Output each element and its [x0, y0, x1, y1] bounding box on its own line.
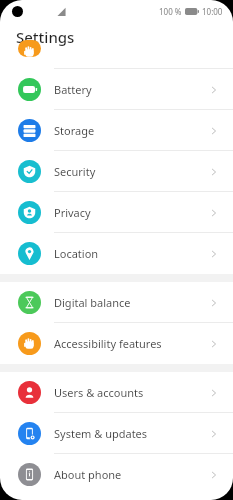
staticText: Battery [54, 82, 92, 97]
button[interactable]: System & updates [0, 413, 233, 454]
staticText: Privacy [54, 205, 91, 220]
button[interactable] [0, 52, 233, 69]
button[interactable]: Location [0, 233, 233, 274]
staticText: Users & accounts [54, 385, 144, 400]
button[interactable]: Accessibility features [0, 323, 233, 364]
staticText: System & updates [54, 426, 148, 441]
staticText: Digital balance [54, 295, 131, 310]
staticText: Accessibility features [54, 336, 162, 351]
staticText: Location [54, 246, 99, 261]
button[interactable]: Digital balance [0, 282, 233, 323]
staticText: 10:00 [202, 6, 223, 17]
staticText: 100 % [159, 6, 182, 17]
staticText: Storage [54, 123, 95, 138]
button[interactable]: Storage [0, 110, 233, 151]
button[interactable]: Users & accounts [0, 372, 233, 413]
button[interactable]: Security [0, 151, 233, 192]
button[interactable]: Battery [0, 69, 233, 110]
button[interactable]: About phone [0, 454, 233, 495]
button[interactable]: Privacy [0, 192, 233, 233]
staticText: Security [54, 164, 96, 179]
staticText: About phone [54, 467, 122, 482]
staticText: Settings [16, 27, 75, 47]
